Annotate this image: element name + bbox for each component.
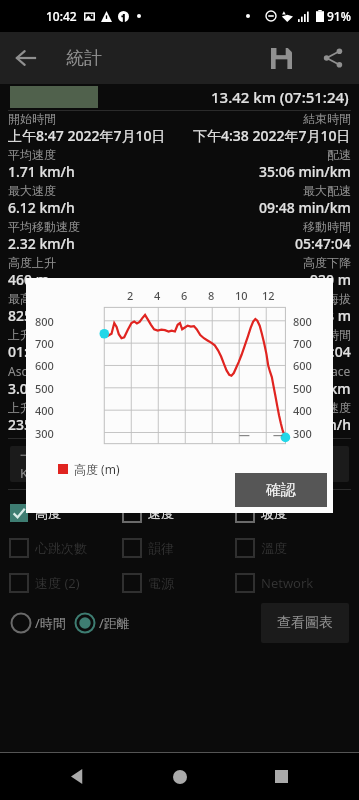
- button[interactable]: Home: [156, 753, 204, 800]
- staticText: 心跳次數: [35, 540, 87, 556]
- staticText: /距離: [99, 614, 130, 632]
- staticText: 高度: [35, 505, 61, 521]
- staticText: 高度上升: [8, 255, 56, 270]
- staticText: 最大配速: [303, 183, 351, 198]
- staticText: Network: [261, 574, 314, 592]
- staticText: 235.05 m/h: [8, 415, 83, 434]
- staticText: 278 m: [310, 306, 351, 325]
- staticText: 91%: [327, 8, 351, 24]
- button[interactable]: 高度: [10, 495, 123, 530]
- staticText: 結束時間: [303, 111, 351, 126]
- button[interactable]: 溫度: [236, 530, 349, 565]
- button[interactable]: Save: [255, 32, 307, 84]
- staticText: 6.12 km/h: [8, 198, 75, 217]
- staticText: 配速: [327, 147, 351, 162]
- staticText: 3.0 km: [8, 379, 53, 398]
- staticText: 500: [35, 381, 54, 396]
- staticText: 35:06 min/km: [259, 162, 351, 181]
- button[interactable]: 韻律: [123, 530, 236, 565]
- staticText: 速度: [148, 505, 174, 521]
- button[interactable]: 坡度: [236, 495, 349, 530]
- button[interactable]: 確認: [235, 473, 327, 507]
- staticText: 800: [35, 314, 54, 329]
- button[interactable]: 一圈的距離 (1.00 KM): [10, 446, 158, 482]
- staticText: 10:42: [46, 8, 77, 24]
- staticText: 500: [293, 381, 312, 396]
- staticText: 坡度: [261, 505, 287, 521]
- staticText: 800: [293, 314, 312, 329]
- staticText: 最高海拔: [8, 291, 56, 306]
- staticText: 400: [35, 403, 54, 418]
- staticText: 700: [293, 336, 312, 351]
- staticText: 600: [293, 358, 312, 373]
- staticText: 8.2 km: [306, 379, 351, 398]
- staticText: 韻律: [148, 540, 174, 556]
- staticText: 上升時間: [8, 327, 56, 342]
- staticText: 最大速度: [8, 183, 56, 198]
- staticText: 上午8:47 2022年7月10日: [8, 126, 166, 145]
- button[interactable]: Network: [236, 565, 349, 600]
- staticText: /時間: [35, 614, 66, 632]
- staticText: 300: [293, 426, 312, 441]
- staticText: 8: [208, 288, 215, 303]
- staticText: Ascent Sp: [8, 363, 63, 379]
- button[interactable]: Recents: [257, 753, 305, 800]
- staticText: 2.32 km/h: [8, 234, 75, 253]
- staticText: 1.71 km/h: [8, 162, 75, 181]
- staticText: 05:47:04: [295, 234, 351, 253]
- staticText: 12: [262, 288, 275, 303]
- staticText: 平均速度: [8, 147, 56, 162]
- staticText: 10: [235, 288, 248, 303]
- staticText: 上升速度: [8, 400, 56, 415]
- staticText: 300: [35, 426, 54, 441]
- staticText: 01:22:18: [8, 342, 64, 361]
- button[interactable]: Back: [0, 32, 52, 84]
- button[interactable]: /時間: [10, 612, 66, 634]
- staticText: Descent pace: [275, 363, 351, 379]
- staticText: 確認: [266, 481, 296, 500]
- staticText: 最低海拔: [303, 291, 351, 306]
- button[interactable]: Share: [307, 32, 359, 84]
- staticText: 查看圖表: [277, 614, 333, 632]
- staticText: 02:11:04: [295, 342, 351, 361]
- staticText: 4: [154, 288, 161, 303]
- staticText: 920 m: [310, 270, 351, 289]
- staticText: 開始時間: [8, 111, 56, 126]
- staticText: 一圈的距離 (1.00 KM): [20, 446, 148, 482]
- staticText: 電源: [148, 575, 174, 591]
- staticText: 2: [127, 288, 134, 303]
- staticText: 移動時間: [303, 219, 351, 234]
- staticText: 6: [181, 288, 188, 303]
- staticText: 600: [35, 358, 54, 373]
- staticText: 700: [35, 336, 54, 351]
- button[interactable]: 速度 (2): [10, 565, 123, 600]
- button[interactable]: 速度: [123, 495, 236, 530]
- button[interactable]: /距離: [74, 612, 130, 634]
- staticText: 溫度: [261, 540, 287, 556]
- staticText: 下午4:38 2022年7月10日: [193, 126, 351, 145]
- button[interactable]: 電源: [123, 565, 236, 600]
- button[interactable]: 查看圖表: [261, 603, 349, 643]
- staticText: 下降速度: [303, 400, 351, 415]
- staticText: 高度 (m): [74, 461, 120, 477]
- staticText: 400: [293, 403, 312, 418]
- staticText: 825 m: [8, 306, 49, 325]
- button[interactable]: 詳細: [263, 446, 349, 482]
- button[interactable]: Back: [54, 753, 102, 800]
- staticText: 高度下降: [303, 255, 351, 270]
- staticText: 下降時間: [303, 327, 351, 342]
- staticText: 460 m: [8, 270, 49, 289]
- staticText: 統計: [66, 47, 102, 70]
- staticText: 09:48 min/km: [259, 198, 351, 217]
- staticText: 速度 (2): [35, 574, 80, 592]
- button[interactable]: 心跳次數: [10, 530, 123, 565]
- staticText: 平均移動速度: [8, 219, 80, 234]
- staticText: 13.42 km (07:51:24): [211, 87, 349, 107]
- staticText: 274.53 m/h: [276, 415, 351, 434]
